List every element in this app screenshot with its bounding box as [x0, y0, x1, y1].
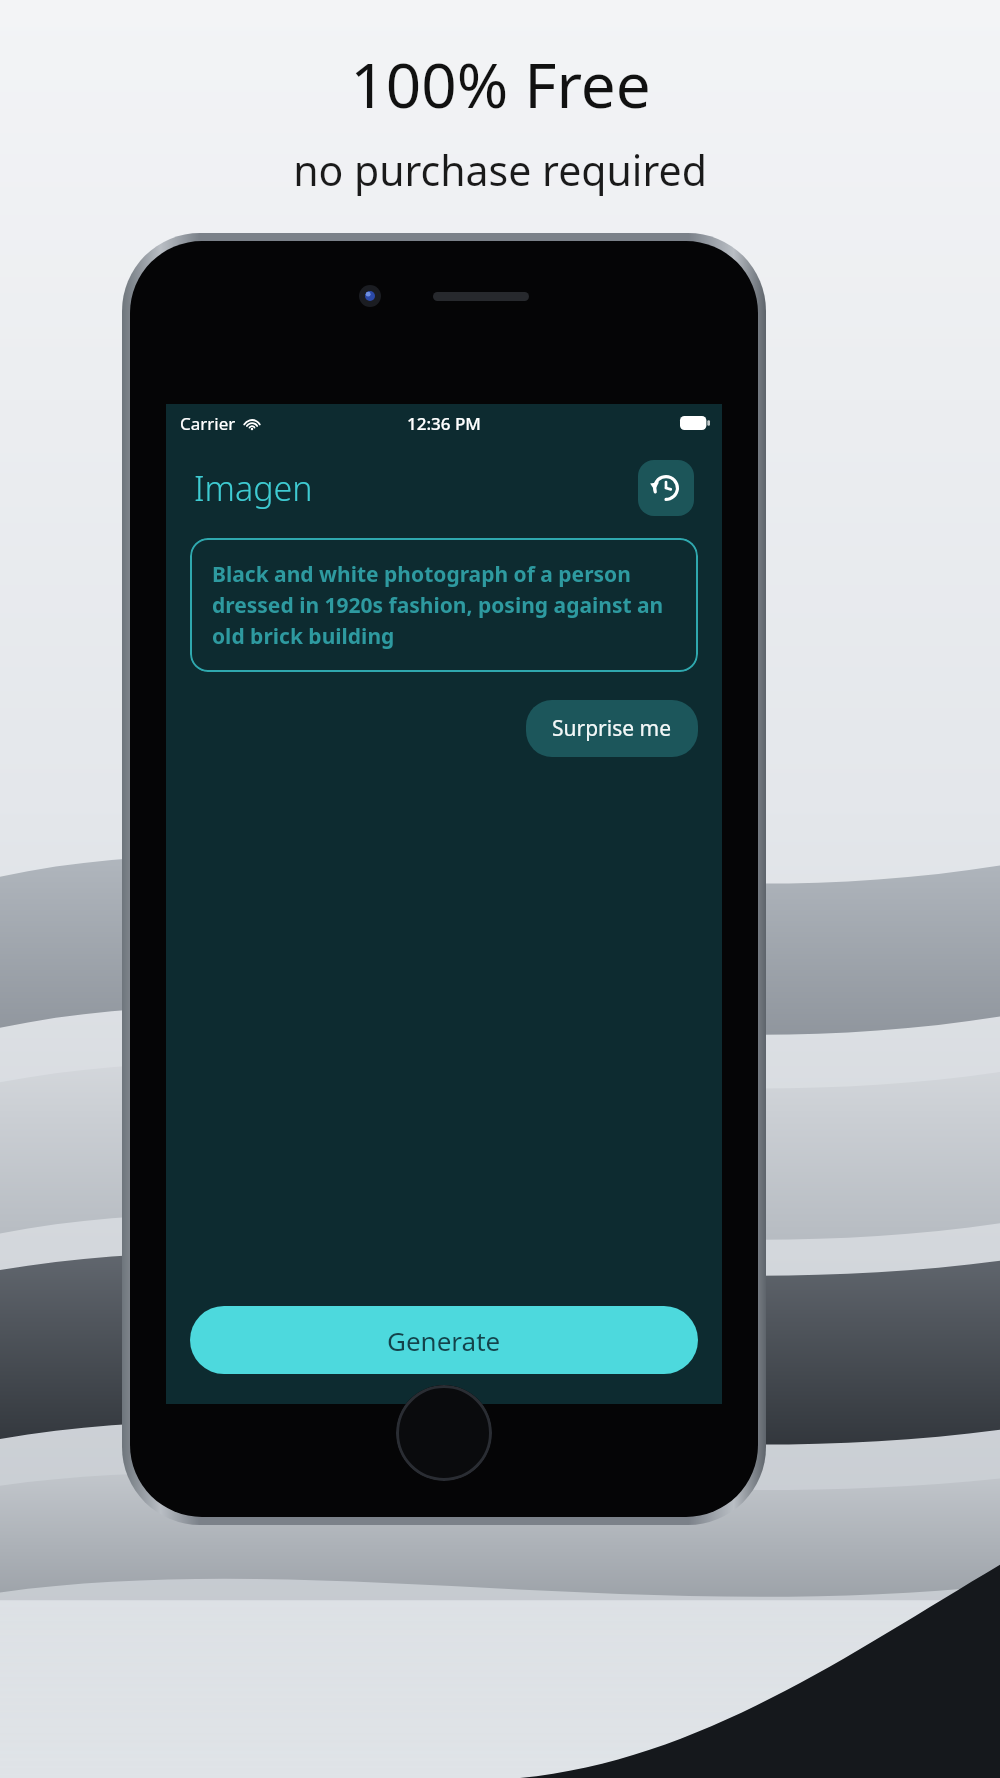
- button[interactable]: Surprise me: [526, 700, 698, 757]
- staticText: Carrier: [180, 412, 236, 435]
- staticText: Surprise me: [552, 714, 672, 743]
- button[interactable]: Generate: [190, 1306, 698, 1374]
- staticText: Imagen: [194, 465, 313, 511]
- staticText: 100% Free: [350, 42, 651, 126]
- staticText: Black and white photograph of a person d…: [212, 560, 676, 650]
- staticText: 12:36 PM: [407, 412, 481, 435]
- button[interactable]: History: [638, 460, 694, 516]
- staticText: Generate: [387, 1323, 501, 1358]
- button[interactable]: Black and white photograph of a person d…: [190, 538, 698, 672]
- staticText: no purchase required: [293, 142, 707, 198]
